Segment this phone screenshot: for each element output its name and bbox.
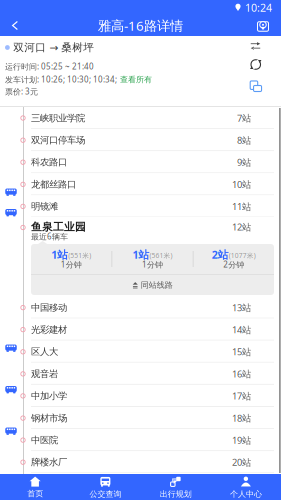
button[interactable]: Refresh — [245, 54, 267, 75]
staticText: 15站 — [232, 346, 251, 358]
staticText: 20站 — [232, 456, 251, 468]
staticText: 12站 — [232, 221, 251, 233]
staticText: 1分钟 — [61, 259, 82, 270]
button[interactable]: 牌楼水厂 — [0, 451, 281, 473]
staticText: 7站 — [237, 112, 251, 124]
staticText: 中加小学 — [31, 390, 67, 402]
button[interactable]: 中医院 — [0, 429, 281, 451]
staticText: 发车计划: 10:26; 10:30; 10:34; — [5, 74, 117, 85]
staticText: 8站 — [237, 134, 251, 146]
button[interactable]: 公交查询 — [70, 474, 140, 500]
staticText: 中医院 — [31, 434, 58, 446]
staticText: 14站 — [232, 323, 251, 336]
staticText: (551米) — [68, 251, 91, 260]
staticText: 雅高-16路详情 — [98, 17, 183, 34]
staticText: 鱼泉工业园 — [31, 220, 86, 233]
staticText: 10:24 — [245, 0, 272, 15]
staticText: 牌楼 — [31, 479, 49, 490]
staticText: 16站 — [232, 368, 251, 380]
staticText: (561米) — [149, 251, 172, 260]
staticText: 17站 — [232, 390, 251, 402]
staticText: 2分钟 — [223, 259, 244, 270]
button[interactable]: 龙都丝路口 — [0, 173, 281, 195]
staticText: 同站线路 — [141, 280, 173, 290]
staticText: 18站 — [232, 412, 251, 424]
button[interactable]: 个人中心 — [211, 474, 281, 500]
staticText: 个人中心 — [230, 489, 262, 499]
button[interactable]: 明镜滩 — [0, 195, 281, 217]
staticText: 中国移动 — [31, 302, 67, 313]
button[interactable]: Back — [3, 15, 27, 36]
staticText: 三峡职业学院 — [31, 112, 85, 124]
staticText: 钢材市场 — [31, 412, 67, 424]
staticText: 1站 — [51, 247, 68, 262]
button[interactable]: 观音岩 — [0, 363, 281, 385]
button[interactable]: 科农路口 — [0, 151, 281, 173]
staticText: 最近6辆车 — [31, 231, 68, 242]
button[interactable]: 中国移动 — [0, 296, 281, 319]
staticText: (1077米) — [229, 251, 256, 260]
button[interactable]: Share — [245, 75, 267, 98]
button[interactable]: 查看所有 — [120, 75, 152, 84]
staticText: 21站 — [232, 478, 251, 491]
staticText: 观音岩 — [31, 368, 58, 380]
staticText: 出行规划 — [160, 489, 192, 499]
button[interactable]: 大学城 — [0, 495, 281, 500]
staticText: 龙都丝路口 — [31, 179, 76, 190]
button[interactable]: 牌楼 — [0, 473, 281, 495]
staticText: 13站 — [232, 301, 251, 314]
staticText: 首页 — [27, 489, 43, 498]
staticText: 双河口 → 桑树坪 — [13, 41, 94, 54]
staticText: 2站 — [212, 247, 229, 262]
button[interactable]: 钢材市场 — [0, 407, 281, 429]
staticText: 10站 — [232, 178, 251, 191]
button[interactable]: 出行规划 — [140, 474, 211, 500]
staticText: 19站 — [232, 434, 251, 446]
button[interactable]: 三峡职业学院 — [0, 107, 281, 129]
staticText: 1分钟 — [142, 259, 163, 270]
button[interactable]: 光彩建材 — [0, 319, 281, 341]
staticText: 光彩建材 — [31, 324, 67, 335]
button[interactable]: Map — [251, 15, 275, 36]
staticText: 科农路口 — [31, 156, 67, 168]
button[interactable]: 同站线路 — [31, 275, 274, 295]
button[interactable]: 双河口停车场 — [0, 129, 281, 151]
staticText: 运行时间: 05:25 ~ 21:40 — [5, 61, 94, 72]
staticText: 区人大 — [31, 346, 58, 357]
button[interactable]: 鱼泉工业园 — [0, 222, 281, 232]
staticText: 公交查询 — [89, 489, 121, 499]
button[interactable]: 中加小学 — [0, 385, 281, 407]
staticText: 9站 — [237, 156, 251, 168]
staticText: 明镜滩 — [31, 201, 58, 212]
staticText: 11站 — [232, 200, 251, 213]
button[interactable]: 首页 — [0, 474, 70, 500]
staticText: 1站 — [132, 247, 149, 262]
button[interactable]: 区人大 — [0, 341, 281, 363]
staticText: 双河口停车场 — [31, 134, 85, 146]
staticText: 票价: 3元 — [5, 86, 38, 97]
staticText: 牌楼水厂 — [31, 456, 67, 468]
button[interactable]: Swap direction — [245, 38, 267, 54]
staticText: 查看所有 — [120, 75, 152, 84]
